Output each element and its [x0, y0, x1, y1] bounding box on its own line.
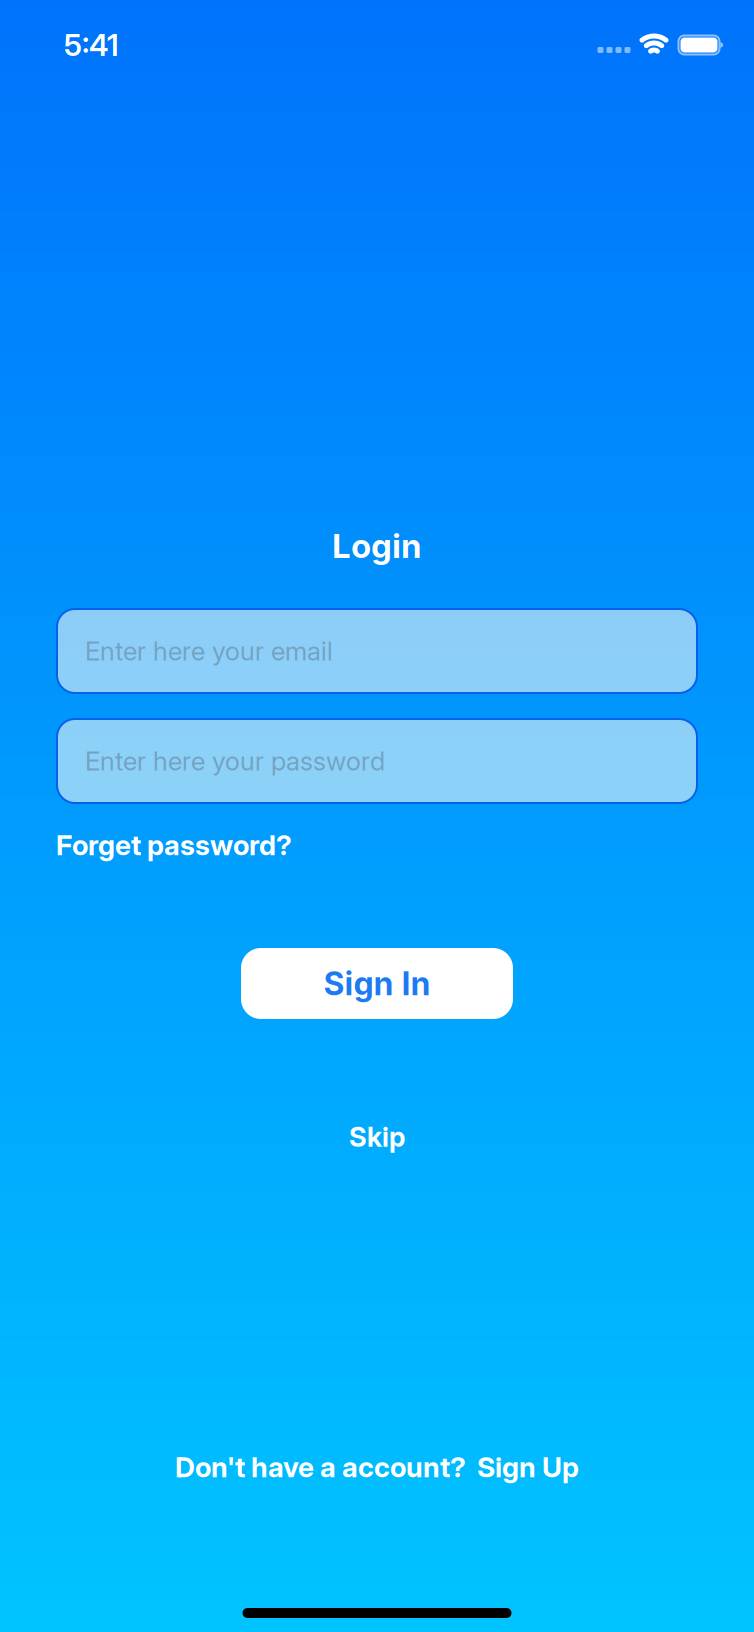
button[interactable]: Sign In [241, 948, 513, 1019]
button[interactable]: Forget password? [56, 828, 292, 861]
staticText: Forget password? [56, 828, 292, 861]
staticText: Skip [349, 1121, 405, 1153]
staticText: Sign Up [477, 1450, 579, 1483]
staticText: Don't have a account? [175, 1450, 466, 1483]
staticText: Login [332, 526, 422, 565]
staticText: 5:41 [64, 27, 119, 63]
button[interactable]: Skip [349, 1117, 405, 1157]
staticText: Enter here your email [85, 636, 333, 666]
staticText: Sign In [323, 965, 430, 1002]
button[interactable]: Sign Up [477, 1450, 579, 1483]
staticText: Enter here your password [85, 746, 385, 776]
